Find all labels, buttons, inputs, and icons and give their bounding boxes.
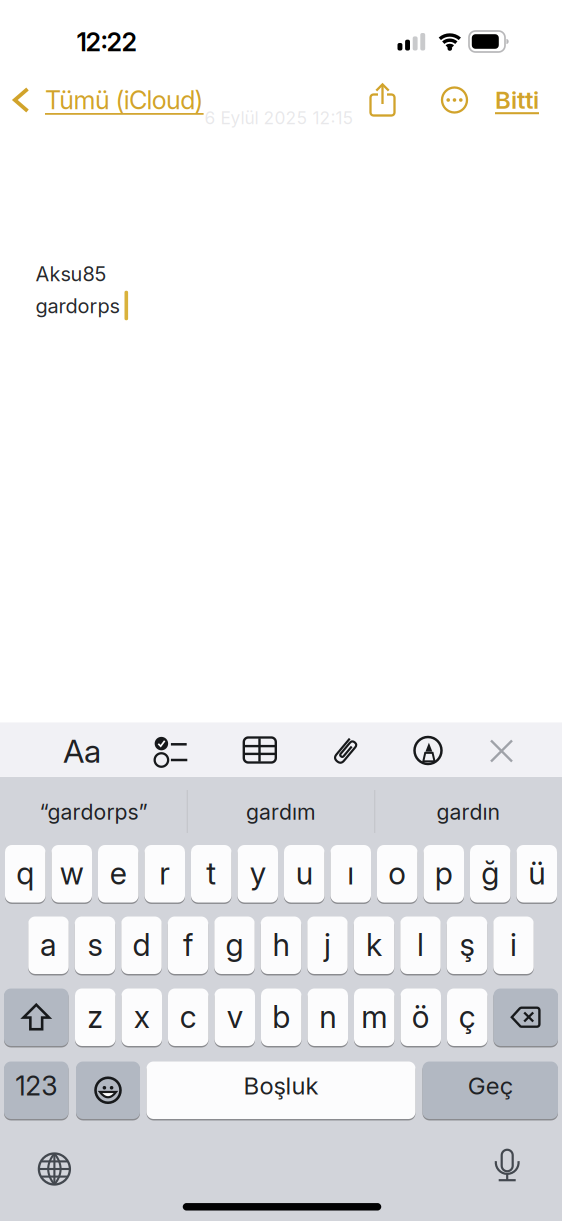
staticText: u bbox=[296, 855, 313, 891]
button[interactable]: ü bbox=[516, 845, 557, 904]
staticText: Tümü (iCloud) bbox=[45, 85, 204, 115]
button[interactable]: ö bbox=[400, 988, 441, 1048]
staticText: h bbox=[272, 927, 289, 963]
button[interactable]: x bbox=[121, 988, 162, 1048]
button[interactable]: y bbox=[237, 845, 278, 904]
staticText: k bbox=[366, 927, 382, 963]
staticText: 12:22 bbox=[76, 27, 137, 57]
staticText: ö bbox=[412, 999, 430, 1035]
staticText: e bbox=[110, 855, 127, 891]
staticText: s bbox=[87, 927, 102, 963]
staticText: ş bbox=[459, 927, 474, 963]
staticText: c bbox=[180, 999, 197, 1035]
staticText: 6 Eylül 2025 12:15 bbox=[204, 108, 353, 128]
button[interactable]: i bbox=[493, 916, 534, 976]
staticText: Aksu85 bbox=[35, 262, 106, 286]
staticText: z bbox=[87, 999, 103, 1035]
button[interactable]: r bbox=[144, 845, 185, 904]
button[interactable]: Bitti bbox=[495, 86, 539, 114]
staticText: ü bbox=[528, 855, 545, 891]
staticText: p bbox=[435, 855, 453, 891]
button[interactable]: u bbox=[284, 845, 324, 904]
staticText: t bbox=[206, 855, 216, 891]
button[interactable]: Dikte bbox=[495, 1149, 519, 1187]
staticText: r bbox=[159, 855, 170, 891]
button[interactable]: m bbox=[354, 988, 394, 1048]
button[interactable]: v bbox=[214, 988, 255, 1048]
button[interactable]: o bbox=[377, 845, 417, 904]
staticText: o bbox=[388, 855, 406, 891]
button[interactable]: Geç bbox=[422, 1061, 558, 1121]
staticText: m bbox=[361, 999, 387, 1035]
button[interactable]: 123 bbox=[4, 1061, 68, 1121]
button[interactable]: e bbox=[98, 845, 138, 904]
button[interactable]: Paylaş bbox=[370, 83, 397, 117]
button[interactable]: t bbox=[191, 845, 231, 904]
button[interactable]: z bbox=[75, 988, 115, 1048]
staticText: ç bbox=[459, 999, 476, 1035]
staticText: gardım bbox=[246, 799, 316, 825]
staticText: “gardorps” bbox=[39, 799, 147, 825]
staticText: d bbox=[132, 927, 150, 963]
button[interactable]: p bbox=[423, 845, 464, 904]
button[interactable]: ş bbox=[447, 916, 487, 976]
button[interactable]: n bbox=[307, 988, 348, 1048]
staticText: f bbox=[183, 927, 193, 963]
button[interactable]: a bbox=[28, 916, 69, 976]
button[interactable]: gardım bbox=[246, 799, 316, 825]
button[interactable]: q bbox=[5, 845, 45, 904]
staticText: w bbox=[60, 855, 84, 891]
staticText: gardorps bbox=[35, 294, 119, 318]
button[interactable]: Shift bbox=[4, 988, 68, 1048]
staticText: x bbox=[134, 999, 150, 1035]
button[interactable]: ı bbox=[330, 845, 371, 904]
staticText: gardın bbox=[436, 799, 500, 825]
button[interactable]: Emoji bbox=[76, 1061, 140, 1121]
button[interactable]: ç bbox=[447, 988, 487, 1048]
staticText: b bbox=[272, 999, 290, 1035]
staticText: a bbox=[40, 927, 57, 963]
staticText: g bbox=[225, 927, 243, 963]
button[interactable]: b bbox=[261, 988, 301, 1048]
staticText: 123 bbox=[15, 1070, 57, 1102]
staticText: i bbox=[510, 927, 517, 963]
button[interactable]: j bbox=[307, 916, 348, 976]
button[interactable]: “gardorps” bbox=[39, 799, 147, 825]
button[interactable]: l bbox=[400, 916, 441, 976]
staticText: Geç bbox=[468, 1071, 513, 1100]
staticText: v bbox=[227, 999, 243, 1035]
staticText: y bbox=[250, 855, 266, 891]
button[interactable]: h bbox=[261, 916, 301, 976]
staticText: j bbox=[324, 927, 331, 963]
button[interactable]: Daha Fazla bbox=[441, 86, 468, 113]
button[interactable]: İşaretleme bbox=[413, 735, 443, 765]
button[interactable]: f bbox=[168, 916, 208, 976]
staticText: Boşluk bbox=[243, 1071, 318, 1100]
button[interactable]: Kapat bbox=[488, 737, 515, 764]
button[interactable]: Biçim bbox=[63, 732, 101, 770]
button[interactable]: Sil bbox=[493, 988, 558, 1048]
button[interactable]: Tablo bbox=[242, 735, 278, 765]
button[interactable]: w bbox=[51, 845, 92, 904]
button[interactable]: k bbox=[354, 916, 394, 976]
button[interactable]: c bbox=[168, 988, 208, 1048]
staticText: q bbox=[16, 855, 34, 891]
button[interactable]: Ek bbox=[327, 733, 363, 769]
button[interactable]: Tümü (iCloud) bbox=[12, 85, 204, 115]
staticText: Bitti bbox=[495, 86, 539, 114]
button[interactable]: ğ bbox=[470, 845, 510, 904]
button[interactable]: g bbox=[214, 916, 255, 976]
staticText: l bbox=[417, 927, 424, 963]
button[interactable]: Sonraki Klavye bbox=[37, 1152, 71, 1186]
staticText: n bbox=[319, 999, 336, 1035]
button[interactable]: gardın bbox=[436, 799, 500, 825]
button[interactable]: s bbox=[75, 916, 115, 976]
button[interactable]: d bbox=[121, 916, 162, 976]
button[interactable]: Yapılacaklar Listesi bbox=[150, 733, 192, 769]
staticText: ğ bbox=[481, 855, 499, 891]
staticText: Aa bbox=[63, 732, 101, 770]
button[interactable]: Boşluk bbox=[146, 1061, 415, 1121]
staticText: ı bbox=[347, 855, 354, 891]
